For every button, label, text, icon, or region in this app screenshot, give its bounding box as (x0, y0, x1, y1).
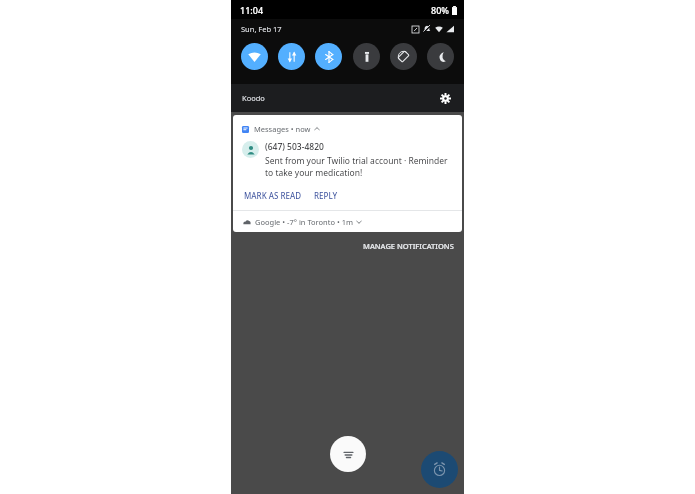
button[interactable]: Messages • now (242, 124, 453, 134)
button[interactable]: Alarm (421, 451, 458, 488)
button[interactable]: Google • -7° in Toronto • 1m (233, 211, 462, 232)
button[interactable]: Quick setting toggle (353, 43, 380, 70)
button[interactable]: Quick setting toggle (315, 43, 342, 70)
staticText: MANAGE NOTIFICATIONS (363, 241, 454, 251)
staticText: 80% (431, 4, 449, 16)
staticText: MARK AS READ (244, 190, 302, 201)
staticText: Koodo (242, 93, 265, 103)
staticText: REPLY (314, 190, 338, 201)
staticText: (647) 503-4820 (265, 141, 324, 153)
staticText: Messages • now (254, 124, 311, 134)
button[interactable]: Clear all notifications (330, 436, 366, 472)
button[interactable]: (647) 503-4820 (242, 141, 452, 179)
staticText: 11:04 (240, 4, 264, 16)
staticText: Sun, Feb 17 (241, 24, 282, 34)
button[interactable]: Quick setting toggle (427, 43, 454, 70)
staticText: Google • -7° in Toronto • 1m (255, 217, 353, 227)
button[interactable]: REPLY (312, 188, 340, 203)
button[interactable]: MANAGE NOTIFICATIONS (353, 237, 464, 255)
staticText: Sent from your Twilio trial account · Re… (265, 155, 452, 179)
button[interactable]: Quick setting toggle (241, 43, 268, 70)
button[interactable]: MARK AS READ (242, 188, 304, 203)
button[interactable]: Quick setting toggle (278, 43, 305, 70)
button[interactable]: Settings (435, 88, 455, 108)
button[interactable]: Quick setting toggle (390, 43, 417, 70)
